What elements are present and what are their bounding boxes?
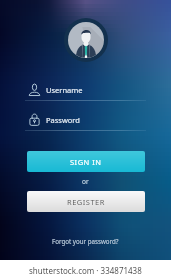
button[interactable]: Forgot your password?	[52, 237, 119, 245]
staticText: Username	[46, 85, 83, 95]
staticText: Password	[46, 115, 80, 125]
button[interactable]: REGISTER	[27, 191, 145, 212]
button[interactable]: SIGN IN	[27, 151, 145, 172]
staticText: REGISTER	[67, 197, 105, 207]
staticText: or	[82, 177, 89, 186]
staticText: shutterstock.com · 334871438	[29, 265, 142, 276]
staticText: SIGN IN	[70, 157, 102, 167]
staticText: Forgot your password?	[52, 237, 119, 245]
